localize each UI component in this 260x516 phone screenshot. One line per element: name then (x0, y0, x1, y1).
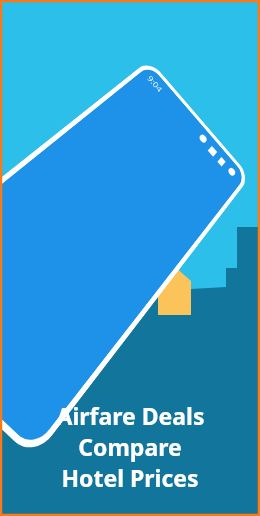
staticText: Hotel Prices (61, 462, 199, 493)
staticText: Airfare Deals (56, 400, 205, 431)
staticText: Compare (78, 431, 182, 462)
staticText: 9:04 (145, 73, 165, 94)
